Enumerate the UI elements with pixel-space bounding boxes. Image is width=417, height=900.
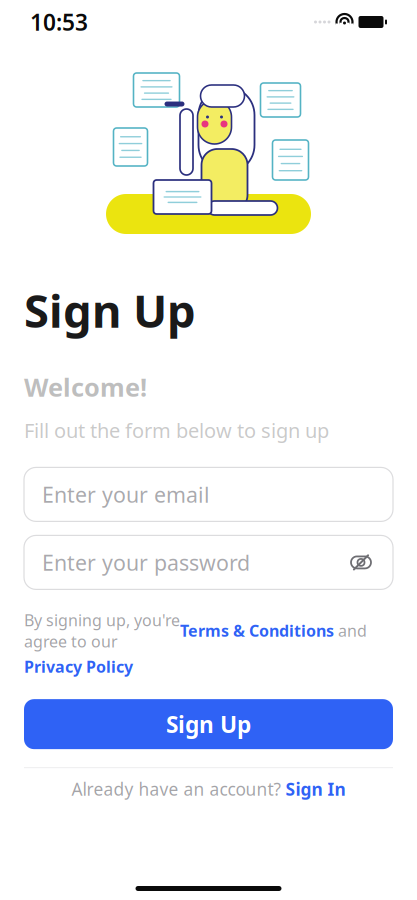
staticText: Terms & Conditions: [180, 620, 334, 641]
staticText: Privacy Policy: [24, 656, 133, 677]
staticText: Fill out the form below to sign up: [24, 417, 329, 443]
staticText: Sign Up: [166, 709, 251, 739]
staticText: 10:53: [30, 7, 88, 37]
staticText: Welcome!: [24, 370, 147, 404]
staticText: Sign Up: [24, 280, 196, 340]
button[interactable]: Terms & Conditions: [180, 620, 334, 641]
staticText: Enter your password: [42, 548, 250, 576]
button[interactable]: Already have an account?: [24, 774, 393, 804]
button[interactable]: Show password: [347, 548, 375, 576]
staticText: and: [334, 620, 367, 641]
staticText: Already have an account?: [71, 778, 281, 801]
button[interactable]: Sign Up: [24, 699, 393, 749]
button[interactable]: Privacy Policy: [24, 656, 133, 677]
staticText: Enter your email: [42, 480, 210, 508]
staticText: By signing up, you're agree to our: [24, 609, 180, 652]
staticText: Sign In: [285, 778, 345, 801]
